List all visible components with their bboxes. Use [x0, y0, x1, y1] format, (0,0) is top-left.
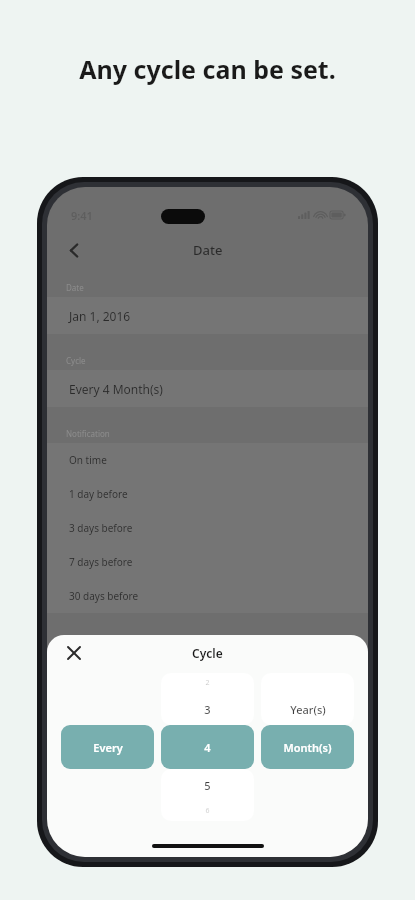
staticText: Cycle: [66, 355, 86, 366]
staticText: 7 days before: [69, 555, 133, 569]
staticText: 6: [205, 806, 210, 816]
button[interactable]: Month(s): [261, 725, 354, 769]
staticText: Any cycle can be set.: [79, 52, 336, 86]
button[interactable]: 1 day before: [47, 477, 368, 511]
staticText: Date: [66, 282, 84, 293]
button[interactable]: Back: [57, 233, 91, 267]
staticText: On time: [69, 453, 107, 467]
button[interactable]: On time: [47, 443, 368, 477]
staticText: Date: [193, 241, 223, 259]
button[interactable]: Close: [59, 638, 89, 668]
button[interactable]: 5: [161, 769, 254, 801]
staticText: Cycle: [192, 645, 223, 661]
staticText: Every: [93, 740, 123, 755]
staticText: Month(s): [283, 740, 332, 755]
staticText: 30 days before: [69, 589, 139, 603]
staticText: 9:41: [71, 208, 93, 223]
button[interactable]: 4: [161, 725, 254, 769]
button[interactable]: Jan 1, 2016: [47, 297, 368, 334]
button[interactable]: Every: [61, 725, 154, 769]
staticText: Jan 1, 2016: [69, 308, 131, 324]
staticText: 1 day before: [69, 487, 128, 501]
staticText: 3: [204, 702, 211, 717]
button[interactable]: 30 days before: [47, 579, 368, 613]
button[interactable]: 7 days before: [47, 545, 368, 579]
staticText: 5: [204, 778, 211, 793]
staticText: 3 days before: [69, 521, 133, 535]
staticText: Every 4 Month(s): [69, 381, 163, 397]
staticText: Notification: [66, 428, 110, 439]
button[interactable]: 3: [161, 693, 254, 725]
button[interactable]: Every 4 Month(s): [47, 370, 368, 407]
staticText: 4: [204, 740, 211, 755]
button[interactable]: Year(s): [261, 693, 354, 725]
staticText: Year(s): [290, 702, 326, 717]
staticText: 2: [205, 678, 210, 688]
button[interactable]: 3 days before: [47, 511, 368, 545]
